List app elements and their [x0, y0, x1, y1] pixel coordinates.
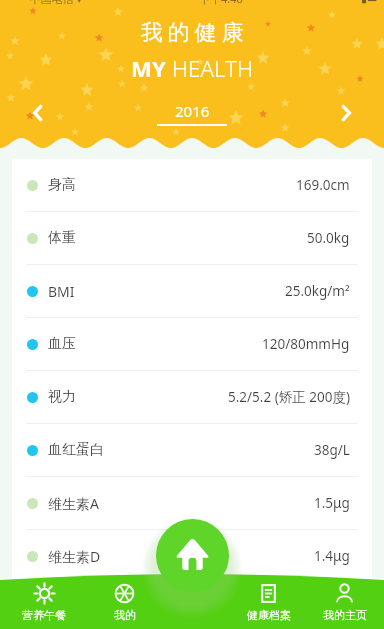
staticText: 维生素D — [48, 547, 101, 566]
button[interactable]: 身高 — [12, 159, 372, 211]
staticText: BMI — [48, 282, 75, 301]
button[interactable]: 维生素D — [12, 530, 372, 582]
staticText: 50.0kg — [307, 229, 350, 247]
staticText: 5.2/5.2 (矫正 200度) — [228, 388, 350, 406]
staticText: 血压 — [48, 335, 76, 353]
button[interactable]: 维生素C — [12, 583, 372, 629]
button[interactable]: 维生素A — [12, 477, 372, 529]
staticText: 1.5μg — [314, 494, 350, 512]
staticText: 维生素C — [48, 600, 99, 619]
button[interactable]: 我的 — [88, 578, 161, 629]
staticText: 身高 — [48, 176, 76, 194]
staticText: 2016 — [175, 101, 210, 121]
staticText: 我的 — [114, 608, 136, 622]
staticText: 健康档案 — [247, 608, 291, 622]
button[interactable]: 健康档案 — [232, 578, 305, 629]
staticText: 120/80mmHg — [262, 335, 350, 353]
staticText: HEALTH — [172, 53, 254, 83]
staticText: 25.0kg/m² — [285, 282, 350, 300]
button[interactable]: Home — [156, 519, 229, 592]
staticText: 血红蛋白 — [48, 441, 104, 459]
staticText: 38g/L — [314, 441, 350, 459]
button[interactable]: Previous year — [0, 95, 76, 131]
staticText: 营养午餐 — [22, 608, 66, 622]
staticText: 维生素A — [48, 494, 99, 513]
staticText: ••••• 中国电信 ▾ — [6, 0, 82, 6]
staticText: 我的健康 — [138, 19, 246, 47]
staticText: MY — [131, 53, 172, 83]
staticText: 视力 — [48, 388, 76, 406]
staticText: 1.4μg — [314, 547, 350, 565]
staticText: 169.0cm — [296, 176, 350, 194]
button[interactable]: 视力 — [12, 371, 372, 423]
button[interactable]: 血红蛋白 — [12, 424, 372, 476]
staticText: 2.1μg — [314, 600, 350, 618]
button[interactable]: BMI — [12, 265, 372, 317]
button[interactable]: 体重 — [12, 212, 372, 264]
staticText: 我的主页 — [323, 608, 367, 622]
button[interactable]: Next year — [308, 95, 384, 131]
staticText: 体重 — [48, 229, 76, 247]
button[interactable]: 营养午餐 — [0, 578, 88, 629]
button[interactable]: 我的主页 — [305, 578, 384, 629]
button[interactable]: 血压 — [12, 318, 372, 370]
staticText: 下午4:48 — [199, 0, 243, 6]
staticText: ▮▬ — [361, 0, 378, 5]
